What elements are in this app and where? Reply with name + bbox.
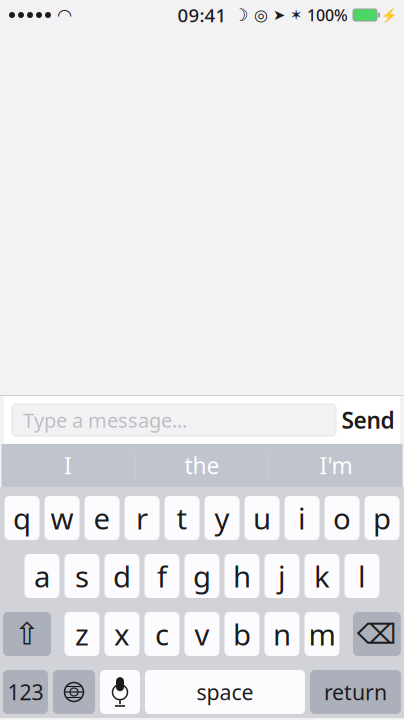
button[interactable]: Shift (3, 612, 51, 656)
button[interactable]: h (224, 554, 259, 598)
button[interactable]: 123 (3, 670, 48, 714)
button[interactable]: y (204, 496, 239, 540)
button[interactable]: the (135, 444, 268, 487)
button[interactable]: r (124, 496, 159, 540)
button[interactable]: s (64, 554, 99, 598)
staticText: k (314, 556, 330, 595)
staticText: b (233, 614, 251, 653)
staticText: I (64, 450, 72, 480)
staticText: Type a message... (23, 407, 187, 433)
button[interactable]: f (144, 554, 179, 598)
staticText: 09:41 (177, 3, 226, 27)
button[interactable]: o (324, 496, 359, 540)
button[interactable]: m (304, 612, 339, 656)
staticText: 123 (7, 678, 43, 706)
staticText: h (233, 556, 251, 595)
button[interactable]: x (104, 612, 139, 656)
staticText: j (278, 556, 286, 595)
button[interactable]: Send (336, 401, 400, 439)
staticText: ◎ (254, 6, 268, 24)
button[interactable]: t (164, 496, 199, 540)
button[interactable]: d (104, 554, 139, 598)
staticText: x (114, 614, 130, 653)
staticText: t (176, 498, 187, 537)
staticText: w (50, 498, 73, 537)
button[interactable]: e (84, 496, 119, 540)
staticText: Send (341, 405, 394, 435)
staticText: space (196, 678, 253, 706)
button[interactable]: w (44, 496, 79, 540)
staticText: v (194, 614, 209, 653)
staticText: a (34, 556, 50, 595)
staticText: m (308, 614, 335, 653)
button[interactable]: Type a message... (12, 404, 336, 436)
button[interactable]: g (184, 554, 219, 598)
button[interactable]: k (304, 554, 339, 598)
staticText: s (75, 556, 89, 595)
staticText: ⌫ (357, 618, 397, 650)
button[interactable]: Dictation (100, 670, 140, 714)
button[interactable]: I'm (269, 444, 402, 487)
button[interactable]: p (364, 496, 399, 540)
staticText: g (193, 556, 211, 595)
button[interactable]: j (264, 554, 299, 598)
button[interactable]: Next keyboard (53, 670, 95, 714)
button[interactable]: space (145, 670, 305, 714)
staticText: p (373, 498, 391, 537)
staticText: ➤ (273, 7, 285, 23)
staticText: f (157, 556, 167, 595)
button[interactable]: u (244, 496, 279, 540)
staticText: I'm (319, 450, 352, 480)
button[interactable]: i (284, 496, 319, 540)
staticText: z (75, 614, 89, 653)
button[interactable]: v (184, 612, 219, 656)
staticText: ⇧ (14, 617, 40, 651)
staticText: return (324, 678, 387, 706)
staticText: ◠ (57, 5, 72, 25)
staticText: e (93, 498, 110, 537)
staticText: 100% (307, 4, 348, 26)
staticText: y (214, 498, 229, 537)
button[interactable]: Delete (353, 612, 401, 656)
staticText: the (184, 450, 219, 480)
button[interactable]: I (1, 444, 134, 487)
staticText: r (136, 498, 148, 537)
staticText: d (113, 556, 131, 595)
button[interactable]: n (264, 612, 299, 656)
staticText: i (298, 498, 306, 537)
button[interactable]: q (4, 496, 39, 540)
button[interactable]: z (64, 612, 99, 656)
button[interactable]: b (224, 612, 259, 656)
staticText: c (155, 614, 169, 653)
staticText: ✶ (290, 7, 302, 23)
staticText: o (333, 498, 351, 537)
staticText: q (13, 498, 31, 537)
staticText: u (253, 498, 271, 537)
button[interactable]: a (24, 554, 59, 598)
staticText: ⚡ (381, 7, 398, 23)
staticText: n (273, 614, 291, 653)
button[interactable]: return (310, 670, 401, 714)
staticText: ☽ (233, 5, 249, 25)
button[interactable]: c (144, 612, 179, 656)
staticText: l (358, 556, 366, 595)
button[interactable]: l (344, 554, 379, 598)
